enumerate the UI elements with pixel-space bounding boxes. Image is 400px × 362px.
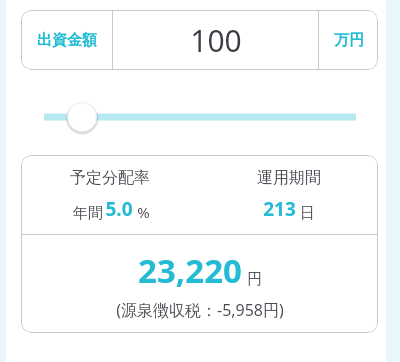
staticText: 年間: [71, 202, 105, 222]
staticText: 23,220: [138, 248, 242, 293]
staticText: (源泉徴収税：-5,958円): [116, 299, 284, 321]
staticText: 5.0: [105, 196, 133, 222]
staticText: 運用期間: [257, 168, 321, 188]
staticText: %: [133, 202, 150, 222]
staticText: 日: [296, 202, 315, 222]
staticText: 予定分配率: [70, 168, 150, 188]
staticText: 円: [247, 270, 262, 289]
button[interactable]: 予定分配率: [21, 155, 378, 333]
staticText: 出資金額: [37, 31, 97, 50]
button[interactable]: 出資金額: [21, 10, 378, 70]
staticText: 100: [190, 20, 242, 61]
staticText: 213: [263, 196, 296, 222]
button[interactable]: 出資金額スライダー: [21, 97, 378, 137]
staticText: 万円: [334, 31, 364, 50]
